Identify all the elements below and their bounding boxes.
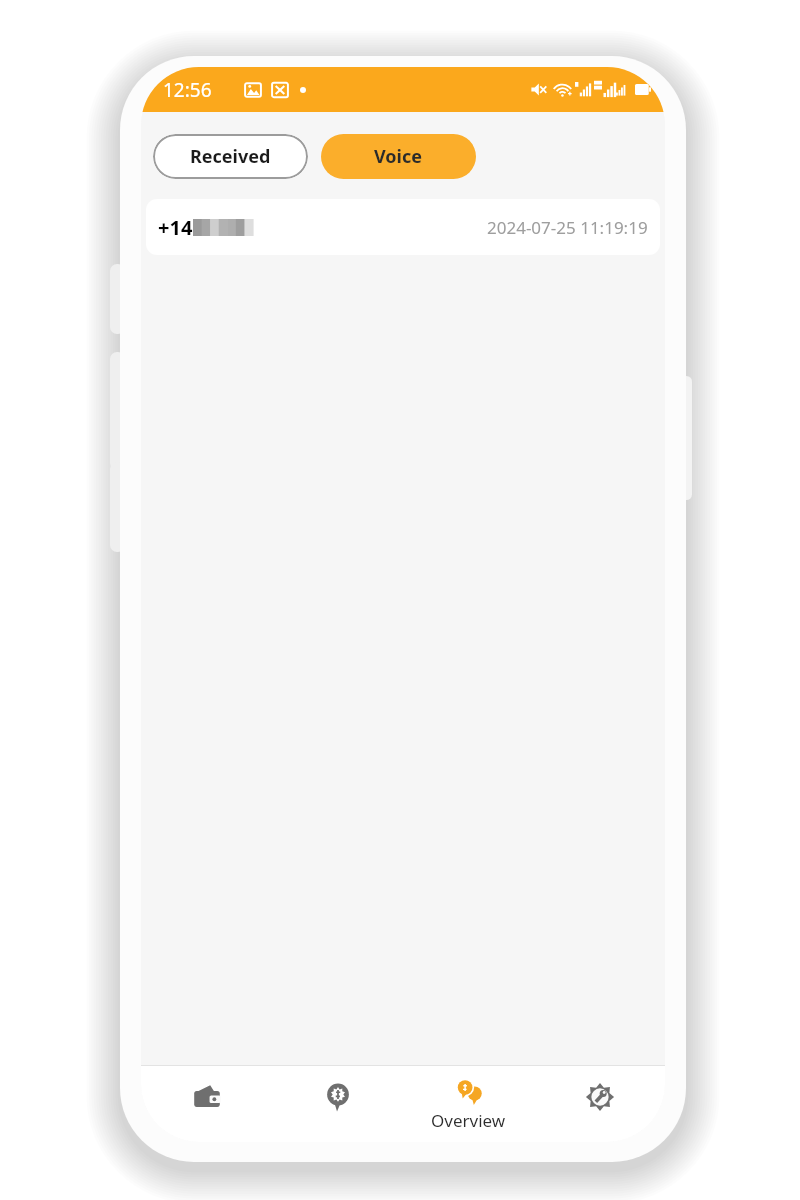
button[interactable]: Messages [272, 1066, 403, 1142]
button[interactable]: Wallet [141, 1066, 272, 1142]
button[interactable]: Overview [403, 1066, 534, 1142]
button[interactable]: Voice [321, 134, 476, 179]
button[interactable]: +14 [146, 199, 660, 255]
staticText: Voice [374, 144, 423, 169]
staticText: 12:56 [163, 77, 212, 103]
staticText: +14 [158, 214, 193, 241]
button[interactable]: Received [153, 134, 308, 179]
staticText: Overview [431, 1109, 506, 1132]
staticText: 2024-07-25 11:19:19 [487, 216, 648, 239]
button[interactable]: Settings [534, 1066, 665, 1142]
staticText: Received [190, 144, 271, 169]
